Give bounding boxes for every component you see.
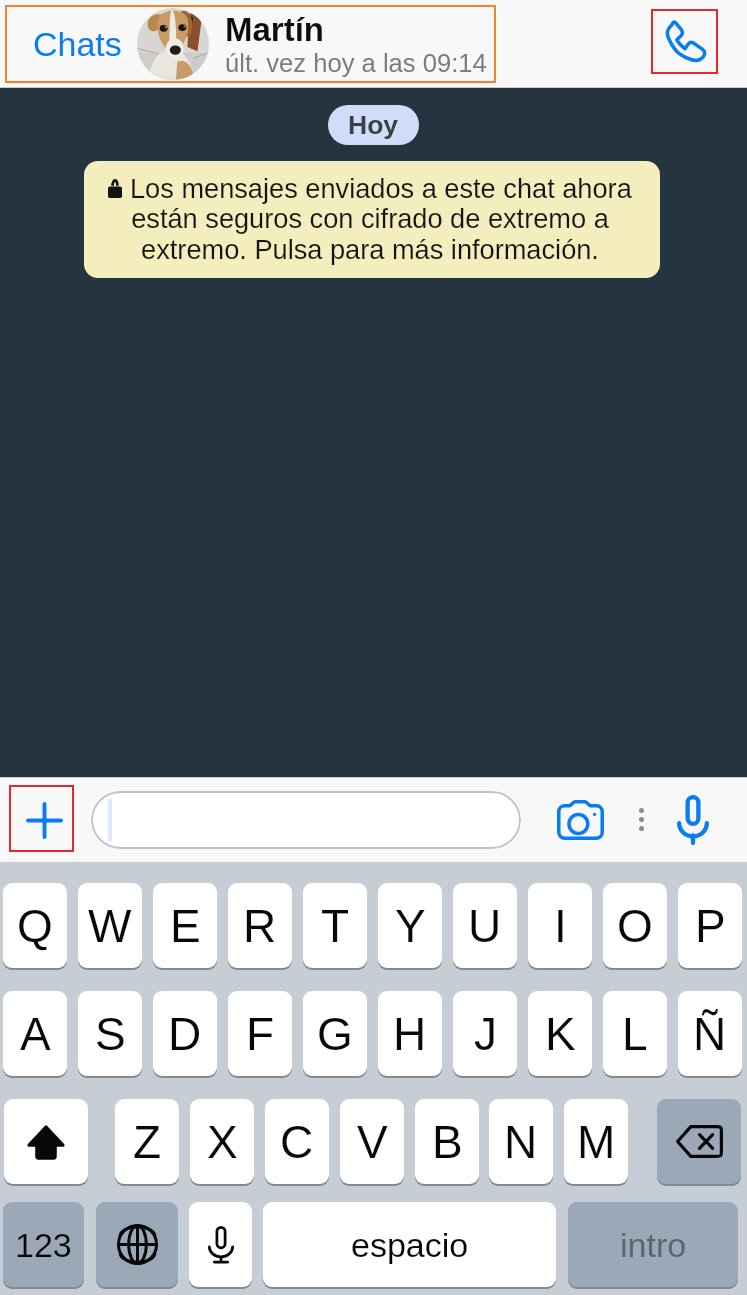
button[interactable]: intro xyxy=(568,1202,738,1287)
staticText: Chats xyxy=(33,25,122,63)
staticText: P xyxy=(695,900,726,951)
button[interactable]: Voice call xyxy=(651,9,718,74)
button[interactable]: O xyxy=(603,883,667,968)
staticText: B xyxy=(432,1116,463,1167)
staticText: D xyxy=(168,1008,202,1059)
button[interactable]: espacio xyxy=(263,1202,556,1287)
button[interactable]: Change language xyxy=(96,1202,178,1287)
button[interactable]: P xyxy=(678,883,742,968)
button[interactable]: U xyxy=(453,883,517,968)
staticText: E xyxy=(170,900,201,951)
button[interactable]: G xyxy=(303,991,367,1076)
staticText: N xyxy=(504,1116,538,1167)
button[interactable]: S xyxy=(78,991,142,1076)
button[interactable]: L xyxy=(603,991,667,1076)
button[interactable]: Camera xyxy=(552,791,608,849)
button[interactable]: R xyxy=(228,883,292,968)
button[interactable]: N xyxy=(489,1099,553,1184)
staticText: F xyxy=(246,1008,275,1059)
staticText: T xyxy=(321,900,350,951)
button[interactable]: Z xyxy=(115,1099,179,1184)
staticText: Y xyxy=(395,900,426,951)
staticText: L xyxy=(622,1008,648,1059)
staticText: H xyxy=(393,1008,427,1059)
button[interactable]: 123 xyxy=(3,1202,84,1287)
staticText: K xyxy=(545,1008,576,1059)
button[interactable]: J xyxy=(453,991,517,1076)
button[interactable]: Attach xyxy=(9,785,74,852)
staticText: M xyxy=(577,1116,616,1167)
button[interactable]: E xyxy=(153,883,217,968)
button[interactable]: D xyxy=(153,991,217,1076)
button[interactable]: W xyxy=(78,883,142,968)
button[interactable]: A xyxy=(3,991,67,1076)
staticText: I xyxy=(554,900,567,951)
button[interactable]: V xyxy=(340,1099,404,1184)
button[interactable]: I xyxy=(528,883,592,968)
staticText: R xyxy=(243,900,277,951)
staticText: últ. vez hoy a las 09:14 xyxy=(225,49,487,78)
staticText: V xyxy=(357,1116,388,1167)
staticText: Q xyxy=(17,900,53,951)
staticText: extremo. Pulsa para más información. xyxy=(84,234,658,265)
staticText: J xyxy=(474,1008,497,1059)
button[interactable]: More options xyxy=(626,790,656,848)
button[interactable]: X xyxy=(190,1099,254,1184)
staticText: están seguros con cifrado de extremo a xyxy=(84,203,658,234)
button[interactable]: Ñ xyxy=(678,991,742,1076)
staticText: A xyxy=(20,1008,51,1059)
staticText: O xyxy=(617,900,653,951)
staticText: U xyxy=(468,900,502,951)
staticText: G xyxy=(317,1008,353,1059)
staticText: S xyxy=(95,1008,126,1059)
button[interactable]: Dictate xyxy=(189,1202,252,1287)
button[interactable]: Q xyxy=(3,883,67,968)
button[interactable]: Hoy xyxy=(328,105,419,145)
button[interactable]: B xyxy=(415,1099,479,1184)
button[interactable]: C xyxy=(265,1099,329,1184)
button[interactable]: T xyxy=(303,883,367,968)
staticText: 123 xyxy=(15,1226,72,1264)
staticText: Hoy xyxy=(348,110,399,140)
staticText: Ñ xyxy=(693,1008,727,1059)
staticText: Martín xyxy=(225,11,324,48)
button[interactable]: H xyxy=(378,991,442,1076)
staticText: Z xyxy=(133,1116,162,1167)
button[interactable]: Los mensajes enviados a este chat ahora xyxy=(84,161,660,278)
button[interactable]: Backspace xyxy=(657,1099,741,1184)
staticText: espacio xyxy=(351,1226,469,1264)
staticText: X xyxy=(207,1116,238,1167)
button[interactable]: Shift xyxy=(4,1099,88,1184)
staticText: W xyxy=(88,900,132,951)
staticText: C xyxy=(280,1116,314,1167)
button[interactable]: M xyxy=(564,1099,628,1184)
button[interactable]: K xyxy=(528,991,592,1076)
button[interactable] xyxy=(91,791,521,849)
button[interactable]: F xyxy=(228,991,292,1076)
staticText: intro xyxy=(620,1226,687,1264)
button[interactable]: Y xyxy=(378,883,442,968)
button[interactable]: Chats xyxy=(5,5,496,83)
staticText: Los mensajes enviados a este chat ahora xyxy=(130,173,632,203)
button[interactable]: Voice message xyxy=(665,788,721,850)
